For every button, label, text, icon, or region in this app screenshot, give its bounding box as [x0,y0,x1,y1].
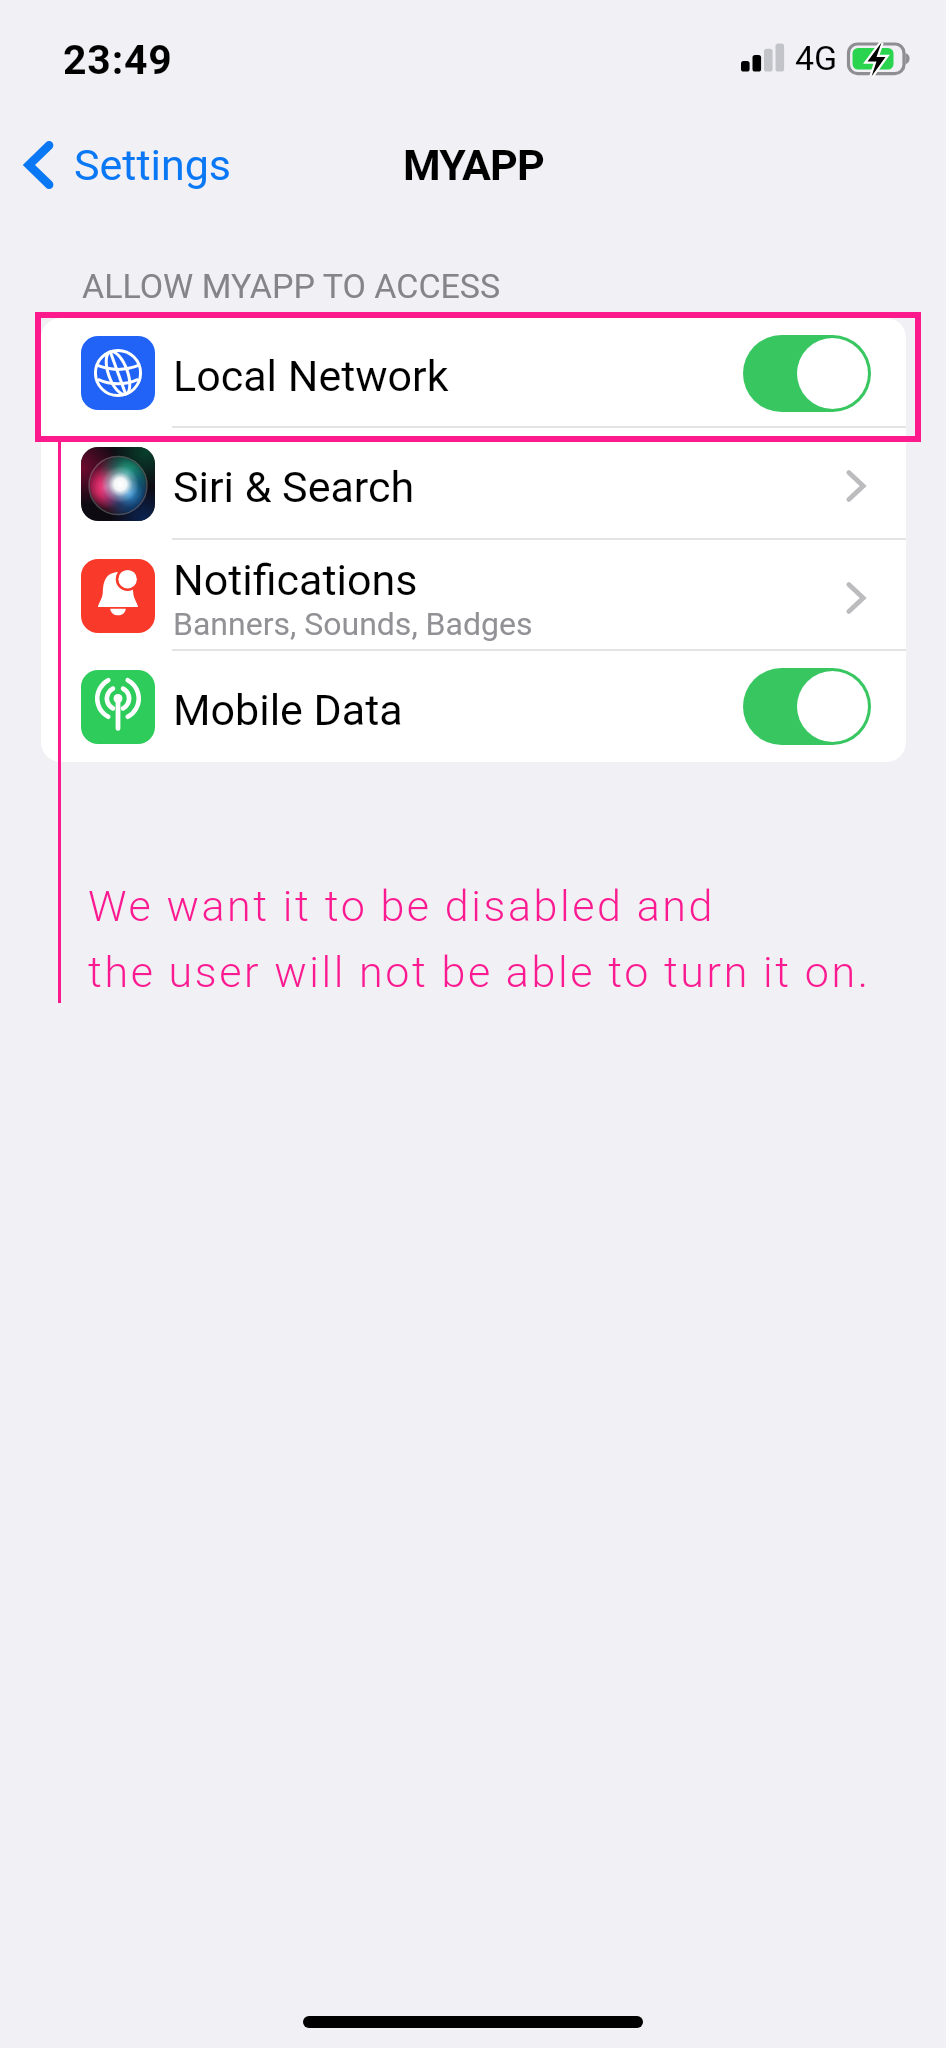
staticText: Notifications [173,555,418,605]
staticText: Settings [74,140,232,190]
button[interactable]: Notifications [41,540,906,651]
staticText: We want it to be disabled and the user w… [88,881,871,998]
button[interactable]: Local Network [41,318,906,428]
staticText: Mobile Data [173,685,403,735]
staticText: Siri & Search [173,462,415,512]
staticText: 4G [795,38,838,78]
button[interactable]: Siri & Search [41,428,906,540]
staticText: ALLOW MYAPP TO ACCESS [82,266,501,306]
staticText: MYAPP [403,140,544,190]
button[interactable]: Local Network, on [743,335,871,412]
staticText: Local Network [173,351,449,401]
other: Back to Settings [25,141,53,189]
button[interactable]: Back to Settings [19,126,242,204]
button[interactable]: Open Siri & Search [831,454,871,514]
staticText: 23:49 [63,36,173,84]
button[interactable]: Open Notifications [831,566,871,626]
staticText: Banners, Sounds, Badges [173,605,533,643]
button[interactable]: Mobile Data [41,651,906,762]
button[interactable]: Mobile Data, on [743,668,871,745]
